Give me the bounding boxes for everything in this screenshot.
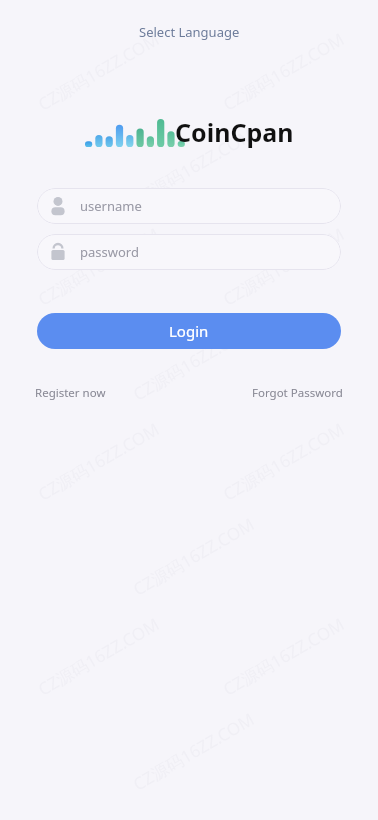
button[interactable]: Forgot Password: [250, 382, 345, 404]
staticText: CZ源码16ZZ.COM: [128, 317, 258, 406]
staticText: username: [80, 197, 142, 215]
staticText: CoinCpan: [175, 115, 294, 149]
button[interactable]: password: [37, 234, 341, 270]
staticText: CZ源码16ZZ.COM: [128, 122, 258, 211]
staticText: Forgot Password: [252, 385, 343, 401]
staticText: CZ源码16ZZ.COM: [218, 222, 348, 311]
button[interactable]: Register now: [33, 382, 108, 404]
staticText: Login: [169, 321, 209, 341]
button[interactable]: username: [37, 188, 341, 224]
staticText: CZ源码16ZZ.COM: [218, 27, 348, 116]
staticText: CZ源码16ZZ.COM: [33, 222, 163, 311]
staticText: Register now: [35, 385, 106, 401]
staticText: password: [80, 243, 139, 261]
staticText: Select Language: [139, 23, 240, 41]
button[interactable]: Select Language: [131, 20, 248, 44]
staticText: CZ源码16ZZ.COM: [33, 27, 163, 116]
button[interactable]: Login: [37, 313, 341, 349]
